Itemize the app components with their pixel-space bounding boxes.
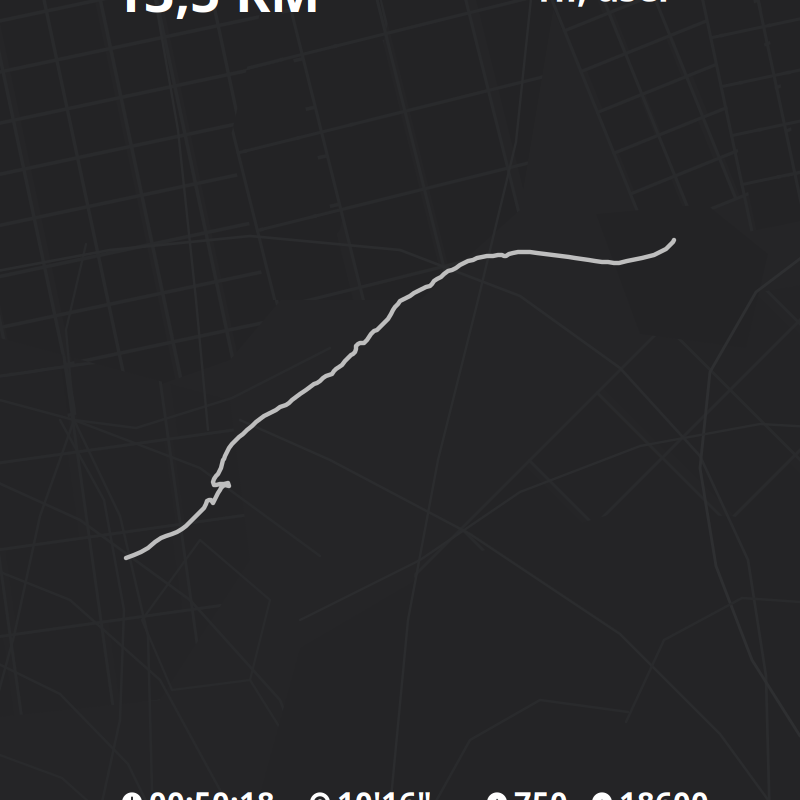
staticText: 00:50:18 [149,782,275,800]
staticText: 13,5 KM [113,0,320,27]
staticText: 18600 [619,782,709,800]
staticText: Hi, user [538,0,674,12]
staticText: 10'16" [337,782,432,800]
staticText: 750 [514,782,568,800]
